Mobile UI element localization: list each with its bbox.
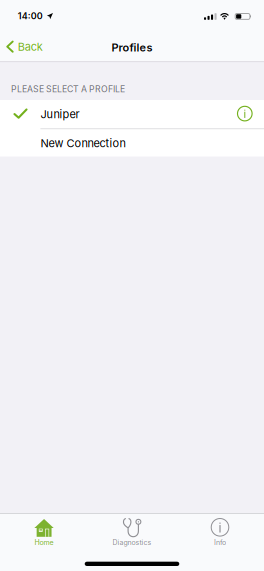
staticText: 14:00: [18, 11, 43, 21]
button[interactable]: Home: [0, 513, 88, 571]
staticText: PLEASE SELECT A PROFILE: [11, 84, 125, 94]
button[interactable]: Diagnostics: [88, 513, 176, 571]
staticText: Home: [34, 538, 53, 547]
button[interactable]: Info: [176, 513, 264, 571]
button[interactable]: Juniper: [0, 100, 264, 128]
button[interactable]: More info about Juniper: [231, 100, 258, 128]
staticText: Info: [214, 538, 226, 547]
staticText: Back: [18, 40, 43, 53]
staticText: New Connection: [40, 136, 125, 150]
button[interactable]: Back: [0, 31, 52, 62]
button[interactable]: New Connection: [0, 129, 264, 156]
staticText: Juniper: [40, 108, 79, 121]
staticText: Diagnostics: [112, 538, 151, 547]
staticText: Profiles: [111, 41, 152, 54]
